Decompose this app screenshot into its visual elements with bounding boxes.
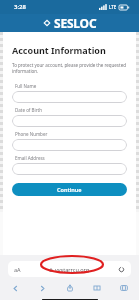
- button[interactable]: Tabs: [117, 281, 131, 295]
- button[interactable]: Continue: [12, 183, 127, 196]
- button[interactable]: Reload: [117, 265, 126, 274]
- staticText: Phone Number: [15, 131, 48, 137]
- staticText: 3:28: [14, 3, 26, 11]
- button[interactable]: [12, 163, 127, 175]
- staticText: Account Information: [12, 44, 106, 56]
- staticText: LTE: [109, 4, 117, 10]
- button[interactable]: Back: [8, 281, 22, 295]
- staticText: vystarrcu.org: [55, 266, 90, 273]
- button[interactable]: aA: [8, 261, 131, 277]
- button[interactable]: [12, 139, 127, 151]
- staticText: aA: [14, 266, 21, 273]
- staticText: SESLOC: [54, 15, 97, 31]
- button[interactable]: Share: [63, 281, 77, 295]
- staticText: Continue: [57, 186, 82, 193]
- staticText: Email Address: [15, 155, 45, 161]
- staticText: Full Name: [15, 83, 37, 89]
- button[interactable]: [12, 91, 127, 103]
- button[interactable]: Bookmarks: [90, 281, 104, 295]
- button[interactable]: Forward: [35, 281, 49, 295]
- staticText: Date of Birth: [15, 107, 42, 113]
- button[interactable]: [12, 115, 127, 127]
- staticText: To protect your account, please provide …: [12, 62, 127, 75]
